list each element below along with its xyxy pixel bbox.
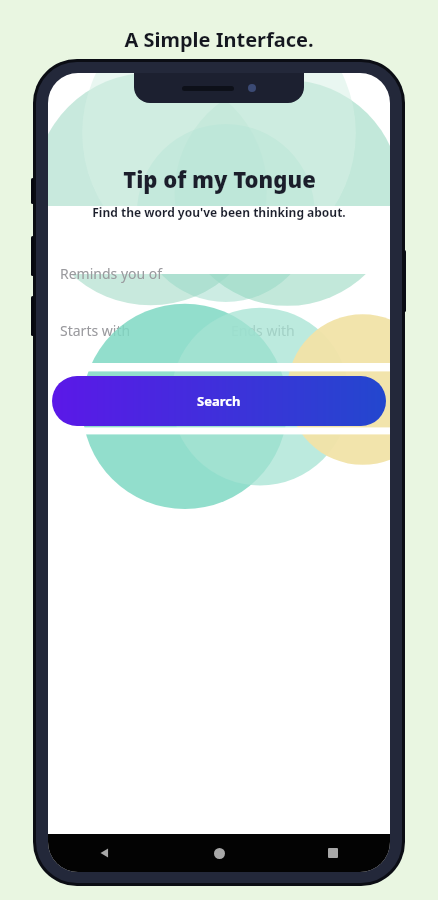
staticText: Ends with — [231, 321, 295, 340]
staticText: A Simple Interface. — [124, 26, 314, 53]
button[interactable]: Starts with — [48, 308, 219, 352]
button[interactable]: Search — [52, 376, 386, 426]
staticText: Find the word you've been thinking about… — [92, 204, 346, 220]
button[interactable]: Back — [48, 834, 162, 872]
staticText: Search — [197, 392, 241, 410]
button[interactable]: Ends with — [219, 308, 390, 352]
button[interactable]: Reminds you of — [48, 251, 390, 295]
staticText: Tip of my Tongue — [123, 164, 316, 194]
button[interactable]: Home — [162, 834, 276, 872]
button[interactable]: Recent apps — [276, 834, 390, 872]
staticText: Reminds you of — [60, 264, 163, 283]
staticText: Starts with — [60, 321, 131, 340]
